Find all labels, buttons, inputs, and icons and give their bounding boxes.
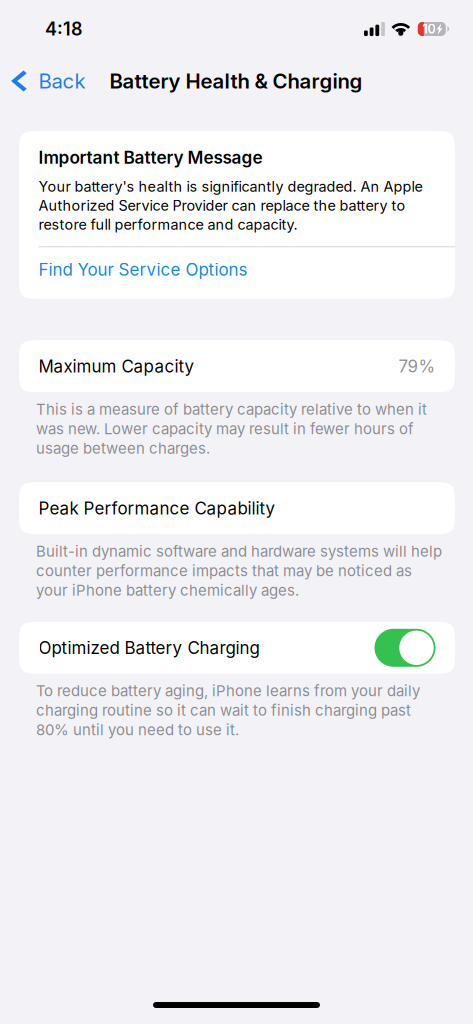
button[interactable]: Find Your Service Options [19, 259, 455, 299]
staticText: 4:18 [45, 18, 83, 40]
staticText: 79% [398, 356, 435, 376]
button[interactable]: Peak Performance Capability [0, 482, 473, 534]
staticText: Important Battery Message [38, 147, 262, 168]
staticText: Battery Health & Charging [109, 69, 362, 93]
staticText: Find Your Service Options [38, 259, 247, 280]
staticText: 10 [422, 21, 435, 37]
staticText: To reduce battery aging, iPhone learns f… [36, 682, 420, 739]
staticText: Maximum Capacity [38, 356, 194, 376]
button[interactable]: Back [0, 58, 95, 104]
button[interactable]: Optimized Battery Charging [374, 629, 435, 667]
staticText: Peak Performance Capability [38, 498, 275, 518]
staticText: This is a measure of battery capacity re… [36, 400, 427, 457]
staticText: Built-in dynamic software and hardware s… [36, 542, 442, 599]
staticText: Your battery's health is significantly d… [38, 178, 422, 233]
staticText: Back [38, 69, 85, 93]
staticText: Optimized Battery Charging [38, 637, 259, 658]
